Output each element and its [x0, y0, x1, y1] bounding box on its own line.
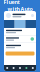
button[interactable]: Tab: [10, 65, 17, 71]
button[interactable]: [4, 50, 36, 57]
staticText: with Auto Speak: [7, 5, 32, 20]
button[interactable]: Tab: [17, 65, 23, 71]
button[interactable]: Tab: [23, 65, 30, 71]
button[interactable]: Tab: [4, 65, 10, 71]
staticText: Tool to Speak Fluent: [3, 0, 36, 5]
button[interactable]: Tab: [30, 65, 36, 71]
